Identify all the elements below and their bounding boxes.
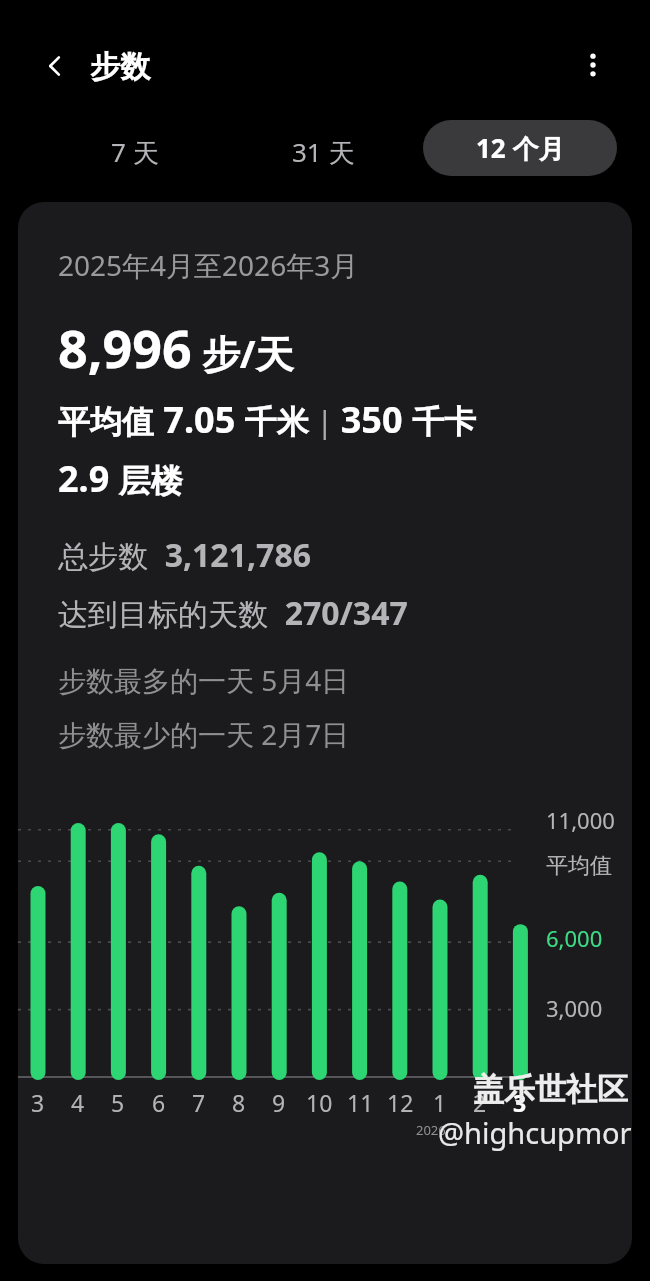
staticText: 12 [387,1087,414,1118]
staticText: 6,000 [546,923,603,953]
staticText: 步数 [90,48,150,86]
button[interactable]: 12 个月 [423,120,617,176]
staticText: 12 个月 [476,130,565,166]
button[interactable]: Back [30,40,82,92]
staticText: 11 [347,1087,374,1118]
button[interactable]: 2025年4月至2026年3月 [18,202,632,1264]
staticText: 2 [473,1087,487,1118]
staticText: 3,000 [546,993,603,1023]
staticText: 总步数 3,121,786 [58,533,312,577]
staticText: 3 [31,1087,45,1118]
staticText: 达到目标的天数 270/347 [58,591,408,635]
button[interactable]: 31 天 [243,124,403,180]
staticText: 7 [192,1087,206,1118]
staticText: 2025年4月至2026年3月 [58,246,359,284]
staticText: 9 [272,1087,286,1118]
staticText: 平均值 7.05 千米 | 350 千卡 [58,395,476,444]
staticText: 10 [306,1087,333,1118]
button[interactable]: 7 天 [60,124,210,180]
staticText: 5 [111,1087,125,1118]
staticText: 2026 [416,1121,446,1139]
staticText: 3 [513,1087,527,1118]
staticText: 8,996 步/天 [58,312,294,383]
staticText: @highcupmore [438,1113,632,1152]
staticText: 2.9 层楼 [58,454,183,503]
staticText: 31 天 [292,134,355,170]
staticText: 盖乐世社区 [473,1070,628,1109]
staticText: 平均值 [546,852,612,880]
staticText: 步数最少的一天 2月7日 [58,715,350,753]
staticText: 4 [71,1087,85,1118]
staticText: 6 [152,1087,166,1118]
staticText: 11,000 [546,805,615,835]
staticText: 1 [433,1087,447,1118]
staticText: 8 [232,1087,246,1118]
staticText: 步数最多的一天 5月4日 [58,661,350,699]
staticText: 7 天 [111,134,159,170]
button[interactable]: More options [568,40,618,90]
